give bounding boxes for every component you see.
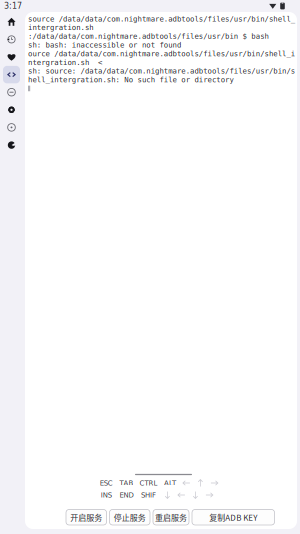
button[interactable]: Disable (0, 83, 23, 101)
button[interactable]: END (116, 489, 136, 500)
button[interactable]: Record (0, 119, 23, 136)
button[interactable]: Terminal (0, 66, 23, 83)
button[interactable]: Settings (0, 101, 23, 119)
staticText: 重启服务 (155, 511, 187, 523)
button[interactable]: INS (96, 489, 116, 500)
button[interactable]: SHIF (136, 489, 160, 500)
button[interactable]: Up (193, 477, 207, 488)
button[interactable]: Favorites (0, 48, 23, 66)
button[interactable]: TAB (116, 477, 136, 488)
staticText: 复制ADB KEY (209, 511, 257, 523)
button[interactable]: ALT (160, 477, 179, 488)
button[interactable]: Down (188, 489, 202, 500)
staticText: INS (101, 491, 112, 499)
staticText: sh: bash: inaccessible or not found (28, 41, 181, 49)
staticText: sh: source: /data/data/com.nightmare.adb… (28, 67, 295, 75)
button[interactable]: 开启服务 (66, 509, 106, 525)
button[interactable]: History (0, 31, 23, 48)
staticText: END (119, 491, 133, 499)
staticText: ource /data/data/com.nightmare.adbtools/… (28, 49, 295, 58)
staticText: SHIF (141, 491, 156, 499)
button[interactable]: Left (174, 489, 188, 500)
staticText: TAB (119, 479, 133, 487)
button[interactable]: Dark mode (0, 136, 23, 154)
button[interactable]: Down (160, 489, 174, 500)
button[interactable]: Home (0, 13, 23, 31)
button[interactable]: 停止服务 (109, 509, 150, 525)
button[interactable]: Left (179, 477, 193, 488)
staticText: intergration.sh (28, 23, 93, 32)
button[interactable]: ESC (96, 477, 116, 488)
button[interactable]: Right (202, 489, 216, 500)
button[interactable]: CTRL (136, 477, 160, 488)
staticText: 3:17 (4, 1, 22, 11)
staticText: :/data/data/com.nightmare.adbtools/files… (28, 32, 268, 40)
staticText: ESC (100, 479, 113, 487)
staticText: CTRL (139, 479, 157, 487)
staticText: 停止服务 (114, 511, 146, 523)
staticText: hell_intergration.sh: No such file or di… (28, 75, 233, 84)
button[interactable]: 重启服务 (153, 509, 189, 525)
staticText: ntergration.sh < (28, 58, 102, 67)
staticText: ALT (164, 479, 176, 487)
button[interactable]: 复制ADB KEY (192, 509, 274, 525)
staticText: 开启服务 (70, 511, 102, 523)
button[interactable]: Right (207, 477, 221, 488)
staticText: source /data/data/com.nightmare.adbtools… (28, 15, 295, 23)
